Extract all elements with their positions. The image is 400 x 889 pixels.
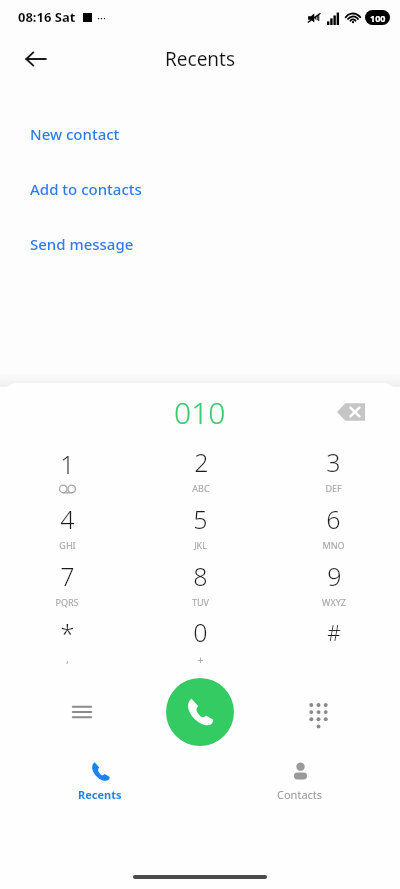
staticText: ··· [97,10,106,25]
staticText: * [60,615,75,650]
staticText: Send message [30,234,134,254]
staticText: Contacts [277,787,323,802]
button[interactable]: 4 [0,498,134,555]
staticText: , [66,651,69,666]
staticText: 2 [194,445,209,479]
staticText: 5 [193,502,208,536]
button[interactable]: 5 [134,498,267,555]
button[interactable]: 7 [0,555,134,612]
staticText: 100 [370,12,386,24]
staticText: ABC [192,482,210,494]
button[interactable]: Options [60,690,104,734]
button[interactable]: Contacts [200,755,400,827]
staticText: DEF [325,482,342,494]
button[interactable]: Back [14,37,58,81]
staticText: GHI [59,539,76,551]
staticText: Recents [78,787,122,802]
staticText: MNO [322,539,345,551]
staticText: New contact [30,124,120,144]
button[interactable]: Recents [0,755,200,827]
button[interactable]: Add to contacts [0,161,400,216]
staticText: Add to contacts [30,179,142,199]
staticText: 3 [326,445,341,479]
staticText: 08:16 Sat [18,8,76,26]
button[interactable]: 9 [267,555,400,612]
button[interactable]: 2 [134,441,267,498]
staticText: TUV [192,596,209,608]
staticText: 010 [174,392,226,433]
staticText: WXYZ [322,596,346,608]
button[interactable]: Send message [0,216,400,271]
staticText: Recents [165,46,236,72]
button[interactable]: 0 [134,612,267,669]
button[interactable]: Dialpad [296,690,340,734]
button[interactable]: 3 [267,441,400,498]
staticText: 1 [60,447,75,481]
button[interactable]: 6 [267,498,400,555]
button[interactable]: 1 [0,441,134,498]
button[interactable]: New contact [0,106,400,161]
staticText: 0 [193,615,208,649]
button[interactable]: # [267,612,400,669]
button[interactable]: Backspace [330,391,372,433]
button[interactable]: Call [166,678,234,746]
staticText: # [327,619,341,648]
staticText: 7 [60,559,75,593]
staticText: 9 [327,559,342,593]
staticText: 8 [193,559,208,593]
staticText: + [197,652,204,667]
button[interactable]: * [0,612,134,669]
button[interactable]: 8 [134,555,267,612]
staticText: JKL [194,539,207,551]
staticText: 4 [60,502,75,536]
staticText: PQRS [55,596,79,608]
staticText: 6 [326,502,341,536]
